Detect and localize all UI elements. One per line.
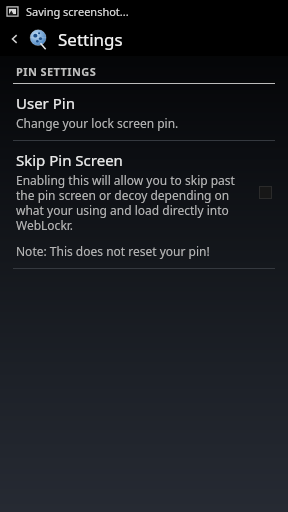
staticText: Note: This does not reset your pin!	[16, 243, 210, 259]
staticText: Settings	[58, 28, 123, 51]
button[interactable]: Note: This does not reset your pin!	[0, 239, 288, 268]
other: Skip Pin Screen toggle	[252, 179, 278, 205]
button[interactable]: Skip Pin Screen	[0, 141, 288, 239]
staticText: User Pin	[16, 93, 75, 113]
button[interactable]: User Pin	[0, 84, 288, 140]
staticText: Saving screenshot...	[26, 4, 129, 19]
button[interactable]: Back	[0, 22, 288, 56]
staticText: Change your lock screen pin.	[16, 115, 179, 131]
staticText: Skip Pin Screen	[16, 150, 123, 170]
staticText: Enabling this will allow you to skip pas…	[16, 172, 244, 233]
other: Back	[8, 32, 22, 46]
staticText: PIN SETTINGS	[16, 64, 97, 79]
